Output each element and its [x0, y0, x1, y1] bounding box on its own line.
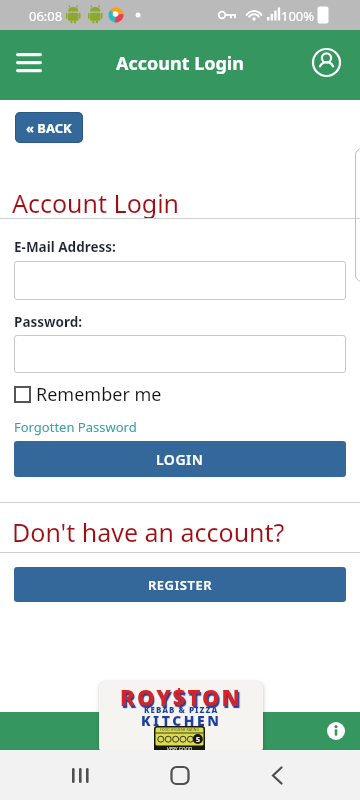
staticText: FOOD HYGIENE RATING — [160, 727, 199, 732]
staticText: Password: — [14, 313, 83, 331]
button[interactable]: Forgotten Password — [14, 418, 137, 436]
staticText: 06:08 — [29, 7, 63, 25]
staticText: Remember me — [36, 382, 162, 407]
button[interactable] — [8, 44, 50, 86]
staticText: ROY$TON — [120, 682, 242, 712]
staticText: Don't have an account? — [12, 515, 285, 549]
staticText: LOGIN — [156, 450, 204, 469]
button[interactable]: « BACK — [15, 112, 83, 143]
button[interactable]: ROY$TON — [99, 681, 263, 755]
button[interactable] — [159, 757, 201, 793]
staticText: « BACK — [26, 119, 72, 137]
staticText: 100% — [281, 7, 315, 25]
button[interactable] — [256, 757, 298, 793]
button[interactable]: Remember me — [14, 382, 162, 407]
staticText: KITCHEN — [141, 711, 222, 730]
staticText: E-Mail Address: — [14, 238, 116, 256]
button[interactable] — [327, 722, 345, 740]
staticText: Account Login — [12, 186, 180, 220]
button[interactable] — [14, 335, 346, 373]
button[interactable] — [14, 261, 346, 300]
staticText: REGISTER — [148, 576, 213, 594]
staticText: VERY GOOD — [167, 746, 193, 752]
staticText: KEBAB & PIZZA — [144, 704, 219, 715]
button[interactable]: REGISTER — [14, 567, 346, 602]
staticText: Account Login — [116, 51, 244, 76]
button[interactable] — [58, 757, 100, 793]
staticText: 5 — [196, 735, 201, 745]
button[interactable]: LOGIN — [14, 441, 346, 477]
button[interactable] — [308, 44, 345, 81]
